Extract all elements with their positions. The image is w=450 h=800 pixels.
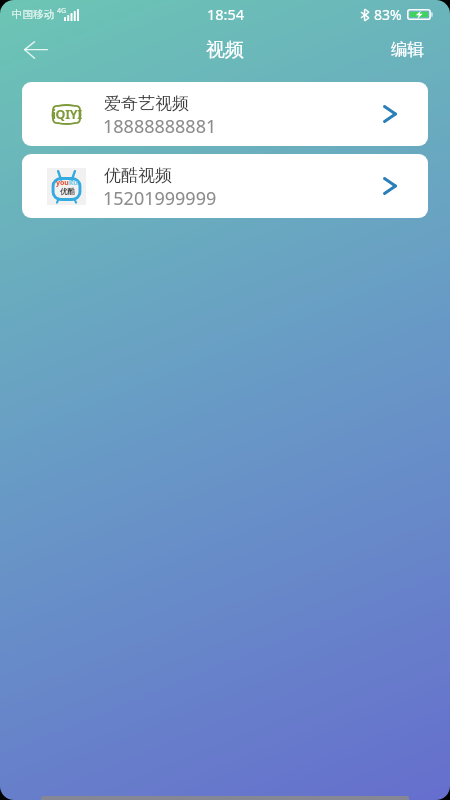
staticText: 83%	[374, 5, 402, 24]
staticText: 视频	[206, 38, 244, 62]
staticText: 18888888881	[103, 114, 217, 139]
staticText: 18:54	[207, 4, 245, 24]
button[interactable]: you	[22, 154, 428, 218]
staticText: 编辑	[391, 39, 424, 60]
button[interactable]: iQIYI	[22, 82, 428, 146]
staticText: 爱奇艺视频	[104, 93, 189, 114]
staticText: ku	[69, 178, 78, 188]
staticText: iQIYI	[45, 106, 89, 123]
staticText: you	[56, 178, 69, 188]
button[interactable]: 编辑	[365, 32, 450, 67]
staticText: 优酷视频	[104, 165, 172, 186]
staticText: 中国移动	[12, 8, 54, 21]
staticText: 15201999999	[103, 186, 217, 211]
staticText: 优酷	[60, 187, 75, 196]
staticText: 4G	[57, 6, 67, 16]
button[interactable]: Back	[15, 31, 57, 69]
